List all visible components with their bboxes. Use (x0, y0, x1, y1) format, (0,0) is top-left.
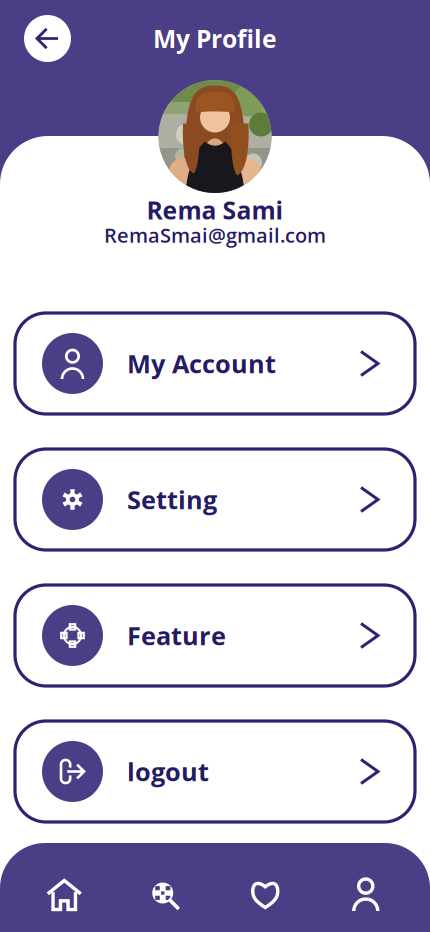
staticText: RemaSmai@gmail.com (104, 221, 326, 249)
button[interactable]: logout (15, 721, 415, 822)
button[interactable]: Search (114, 858, 215, 932)
button[interactable]: Back (24, 15, 71, 62)
button[interactable]: Favorites (215, 858, 315, 932)
button[interactable]: Setting (15, 449, 415, 550)
staticText: Feature (127, 618, 226, 653)
staticText: Rema Sami (146, 193, 283, 227)
staticText: My Account (127, 346, 276, 381)
staticText: My Profile (153, 22, 277, 55)
button[interactable]: Feature (15, 585, 415, 686)
staticText: logout (127, 754, 209, 789)
button[interactable]: My Account (15, 313, 415, 414)
button[interactable]: Home (14, 858, 114, 932)
staticText: Setting (127, 482, 217, 517)
button[interactable]: Profile (315, 858, 416, 932)
